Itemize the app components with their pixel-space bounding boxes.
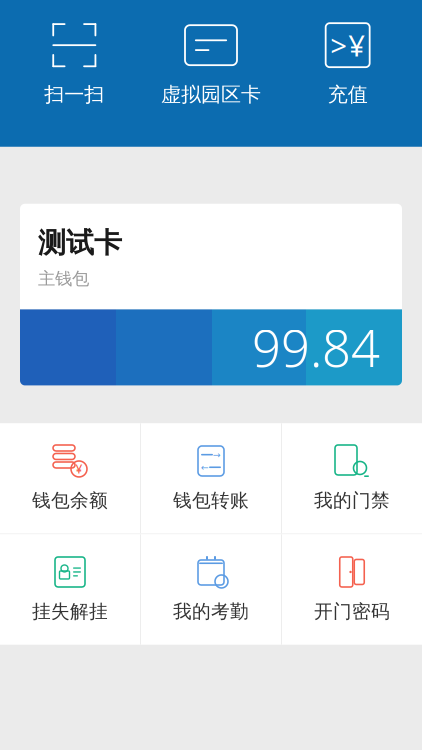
- staticText: 钱包转账: [173, 489, 249, 512]
- button[interactable]: 我的考勤: [141, 534, 281, 644]
- staticText: ¥: [75, 461, 82, 477]
- staticText: 充值: [328, 82, 368, 107]
- staticText: 99.84: [252, 314, 380, 381]
- button[interactable]: 虚拟园区卡: [143, 18, 279, 111]
- staticText: 扫一扫: [44, 82, 104, 107]
- button[interactable]: 开门密码: [282, 534, 422, 644]
- staticText: ¥: [348, 26, 365, 65]
- button[interactable]: →: [141, 423, 281, 533]
- button[interactable]: 我的门禁: [282, 423, 422, 533]
- staticText: →: [213, 449, 221, 460]
- button[interactable]: 挂失解挂: [0, 534, 140, 644]
- staticText: 测试卡: [38, 226, 122, 260]
- staticText: 我的考勤: [173, 600, 249, 623]
- button[interactable]: ¥: [0, 423, 140, 533]
- staticText: 钱包余额: [32, 489, 108, 512]
- button[interactable]: 扫一扫: [6, 18, 143, 111]
- staticText: ←: [201, 462, 209, 473]
- staticText: >: [330, 26, 347, 65]
- staticText: 主钱包: [38, 268, 89, 289]
- staticText: 虚拟园区卡: [161, 82, 261, 107]
- staticText: 我的门禁: [314, 489, 390, 512]
- button[interactable]: >: [279, 18, 416, 111]
- staticText: 开门密码: [314, 600, 390, 623]
- staticText: 挂失解挂: [32, 600, 108, 623]
